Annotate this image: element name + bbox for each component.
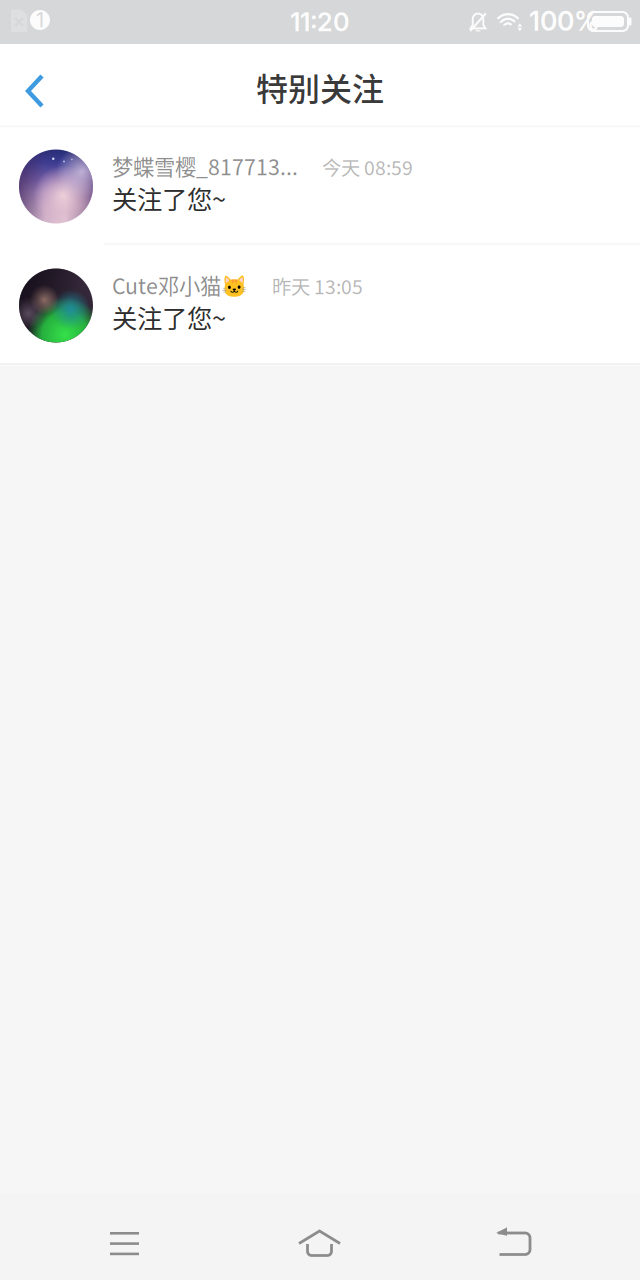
- button[interactable]: 梦蝶雪樱_817713...: [0, 127, 640, 246]
- staticText: 今天 08:59: [322, 153, 413, 181]
- staticText: 1: [36, 8, 44, 32]
- staticText: Cute邓小猫🐱: [112, 269, 248, 300]
- staticText: 11:20: [290, 7, 350, 37]
- staticText: 关注了您~: [112, 298, 226, 335]
- button[interactable]: Home: [271, 1203, 368, 1280]
- button[interactable]: Back: [468, 1203, 560, 1280]
- staticText: 特别关注: [256, 64, 384, 110]
- staticText: 100%: [529, 5, 600, 37]
- button[interactable]: Cute邓小猫🐱: [0, 246, 640, 365]
- staticText: 梦蝶雪樱_817713...: [112, 150, 298, 181]
- button[interactable]: Back: [0, 44, 63, 130]
- staticText: 昨天 13:05: [272, 272, 363, 300]
- staticText: 关注了您~: [112, 179, 226, 216]
- button[interactable]: Recent apps: [82, 1204, 167, 1280]
